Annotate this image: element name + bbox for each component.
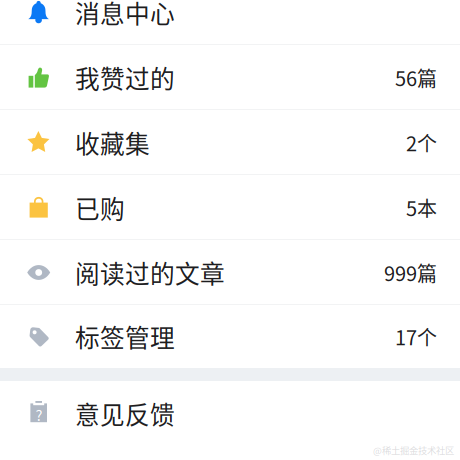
button[interactable]: 消息中心: [0, 0, 460, 45]
staticText: @稀土掘金技术社区: [373, 443, 454, 457]
button[interactable]: 收藏集: [0, 110, 460, 175]
button[interactable]: 标签管理: [0, 305, 460, 368]
button[interactable]: 我赞过的: [0, 45, 460, 110]
staticText: 收藏集: [75, 125, 150, 160]
staticText: 消息中心: [75, 0, 175, 30]
staticText: 标签管理: [75, 319, 175, 354]
staticText: 5本: [406, 193, 437, 222]
staticText: 我赞过的: [75, 60, 175, 95]
staticText: 已购: [75, 190, 125, 225]
button[interactable]: 阅读过的文章: [0, 240, 460, 305]
staticText: 2个: [406, 128, 437, 157]
button[interactable]: ?: [0, 381, 460, 446]
staticText: ?: [35, 404, 42, 425]
staticText: 意见反馈: [75, 396, 175, 431]
button[interactable]: 已购: [0, 175, 460, 240]
staticText: 阅读过的文章: [75, 255, 225, 290]
staticText: 999篇: [384, 258, 437, 287]
staticText: 17个: [395, 322, 437, 351]
staticText: 56篇: [395, 63, 437, 92]
